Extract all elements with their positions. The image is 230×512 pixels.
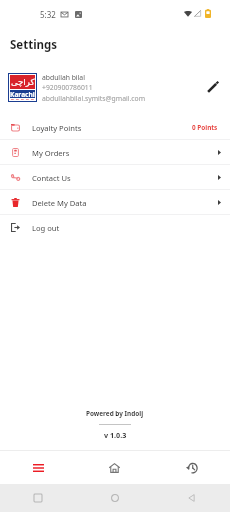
staticText: Karachi <box>10 90 35 98</box>
staticText: Powered by Indolj <box>86 409 144 418</box>
staticText: Loyalty Points <box>32 123 82 133</box>
staticText: abdullah bilal <box>42 73 85 82</box>
staticText: 5:32 <box>40 9 56 20</box>
button[interactable]: Home <box>76 451 153 484</box>
button[interactable]: Edit profile <box>198 73 226 101</box>
button[interactable]: Menu <box>0 451 76 484</box>
staticText: abdullahbilal.symits@gmail.com <box>42 94 146 103</box>
staticText: v 1.0.3 <box>104 430 127 440</box>
staticText: کراچی <box>11 77 35 87</box>
staticText: 0 Points <box>192 123 218 132</box>
staticText: Delete My Data <box>32 198 87 208</box>
button[interactable]: Contact Us <box>0 165 230 190</box>
staticText: Contact Us <box>32 173 71 183</box>
button[interactable]: Delete My Data <box>0 190 230 215</box>
button[interactable]: کراچی <box>0 64 230 110</box>
staticText: Settings <box>10 37 58 53</box>
button[interactable]: Log out <box>0 215 230 240</box>
button[interactable]: My Orders <box>0 140 230 165</box>
staticText: Log out <box>32 223 60 233</box>
button[interactable]: Loyalty Points <box>0 115 230 140</box>
staticText: My Orders <box>32 148 70 158</box>
staticText: +920900786011 <box>42 83 93 92</box>
button[interactable]: History <box>153 451 230 484</box>
